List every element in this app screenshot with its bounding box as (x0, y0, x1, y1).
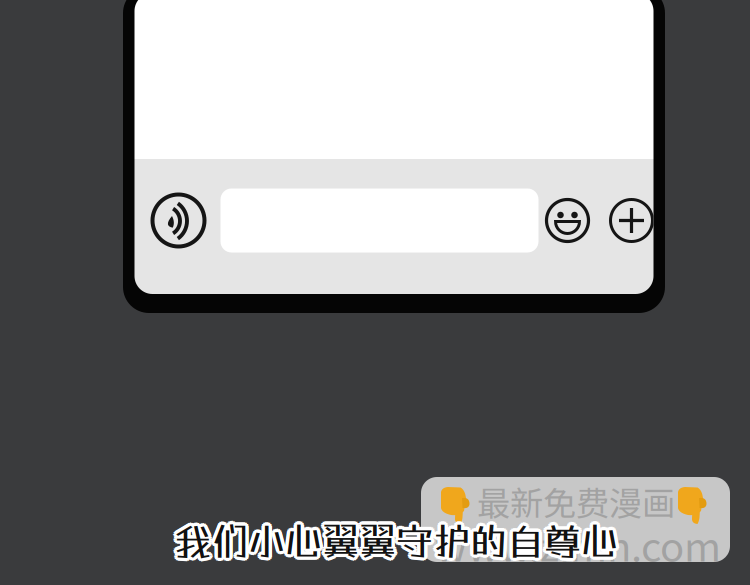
staticText: 我们小心翼翼守护的自尊心 (172, 521, 616, 565)
staticText: 我们小心翼翼守护的自尊心 (176, 517, 620, 561)
staticText: 我们小心翼翼守护的自尊心 (177, 517, 621, 561)
staticText: 我们小心翼翼守护的自尊心 (171, 519, 615, 563)
staticText: www.zimh.com (435, 515, 721, 573)
staticText: 我们小心翼翼守护的自尊心 (172, 517, 616, 561)
staticText: 我们小心翼翼守护的自尊心 (171, 521, 615, 565)
staticText: 我们小心翼翼守护的自尊心 (174, 522, 618, 566)
staticText: 我们小心翼翼守护的自尊心 (174, 519, 618, 563)
button[interactable]: Voice message (152, 194, 204, 246)
staticText: 我们小心翼翼守护的自尊心 (171, 517, 615, 561)
staticText: 我们小心翼翼守护的自尊心 (177, 519, 621, 563)
staticText: 我们小心翼翼守护的自尊心 (174, 516, 618, 560)
button[interactable]: More (610, 199, 652, 241)
staticText: 我们小心翼翼守护的自尊心 (177, 521, 621, 565)
staticText: 我们小心翼翼守护的自尊心 (172, 516, 616, 560)
staticText: 我们小心翼翼守护的自尊心 (176, 516, 620, 560)
staticText: 我们小心翼翼守护的自尊心 (176, 521, 620, 565)
button[interactable]: Emoji (546, 199, 588, 241)
staticText: 最新免费漫画 (477, 477, 675, 525)
staticText: 我们小心翼翼守护的自尊心 (176, 522, 620, 566)
staticText: 我们小心翼翼守护的自尊心 (172, 522, 616, 566)
